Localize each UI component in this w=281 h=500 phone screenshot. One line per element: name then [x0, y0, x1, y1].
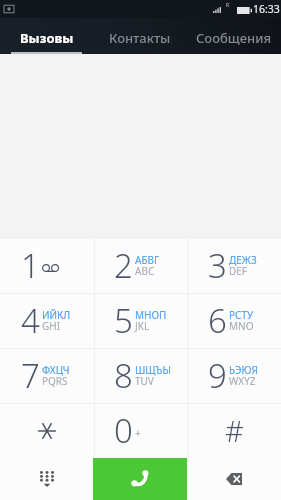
staticText: ИЙКЛ	[42, 308, 71, 322]
staticText: МНОП	[135, 308, 167, 322]
staticText: TUV	[135, 374, 154, 388]
staticText: 7	[21, 353, 40, 398]
button[interactable]: 3	[187, 239, 281, 293]
button[interactable]: Hide dialpad	[0, 458, 93, 500]
staticText: GHI	[42, 319, 61, 333]
button[interactable]: Call	[93, 458, 187, 500]
button[interactable]: Delete	[187, 458, 281, 500]
staticText: 4	[21, 298, 40, 343]
staticText: #	[225, 411, 244, 450]
staticText: ШЩЪЫ	[135, 363, 171, 377]
staticText: ЬЭЮЯ	[229, 363, 258, 377]
button[interactable]: Вызовы	[0, 18, 93, 54]
button[interactable]: 6	[187, 294, 281, 348]
button[interactable]: 4	[0, 294, 93, 348]
staticText: РСТУ	[229, 308, 254, 322]
button[interactable]: 2	[93, 239, 187, 293]
staticText: 6	[208, 298, 227, 343]
button[interactable]: 0	[93, 404, 187, 458]
staticText: R	[226, 2, 230, 9]
staticText: АБВГ	[135, 253, 160, 267]
staticText: Вызовы	[20, 29, 74, 47]
button[interactable]: 5	[93, 294, 187, 348]
staticText: 2	[114, 243, 133, 288]
staticText: 8	[114, 353, 133, 398]
staticText: 16:33	[253, 2, 280, 16]
button[interactable]: Сообщения	[187, 18, 281, 54]
staticText: ДЕЖЗ	[229, 253, 257, 267]
staticText: Сообщения	[196, 29, 272, 47]
staticText: JKL	[135, 319, 150, 333]
button[interactable]	[0, 404, 93, 458]
button[interactable]: Контакты	[93, 18, 187, 54]
button[interactable]: 1	[0, 239, 93, 293]
staticText: 3	[208, 243, 227, 288]
staticText: +	[135, 426, 141, 440]
staticText: MNO	[229, 319, 254, 333]
staticText: 1	[21, 243, 40, 288]
staticText: Контакты	[109, 29, 171, 47]
staticText: 5	[114, 298, 133, 343]
staticText: PQRS	[42, 374, 68, 388]
staticText: WXYZ	[229, 374, 256, 388]
button[interactable]: 9	[187, 349, 281, 403]
staticText: DEF	[229, 264, 248, 278]
staticText: 9	[208, 353, 227, 398]
button[interactable]: 8	[93, 349, 187, 403]
button[interactable]: #	[187, 404, 281, 458]
staticText: 0	[114, 408, 133, 453]
staticText: ABC	[135, 264, 155, 278]
staticText: ФХЦЧ	[42, 363, 70, 377]
button[interactable]: 7	[0, 349, 93, 403]
